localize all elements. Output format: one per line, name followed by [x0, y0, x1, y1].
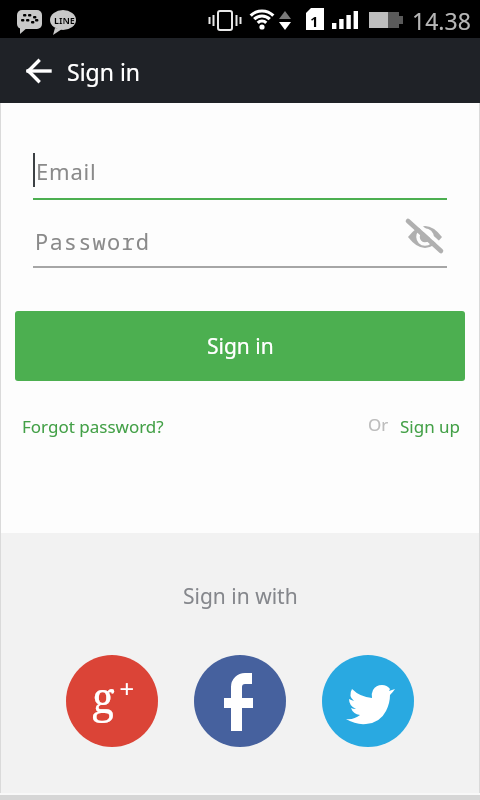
staticText: LINE: [54, 14, 75, 26]
staticText: Email: [36, 156, 97, 186]
staticText: +: [119, 669, 135, 707]
staticText: Sign in: [207, 332, 274, 361]
staticText: Forgot password?: [22, 415, 164, 438]
staticText: Sign in with: [183, 582, 298, 611]
button[interactable]: g: [66, 655, 158, 747]
button[interactable]: Forgot password?: [22, 415, 164, 438]
staticText: Sign up: [400, 415, 461, 438]
staticText: Sign in: [67, 56, 141, 87]
staticText: g: [92, 668, 115, 725]
staticText: Password: [35, 226, 151, 256]
button[interactable]: [403, 217, 447, 257]
button[interactable]: [322, 655, 414, 747]
button[interactable]: [25, 57, 53, 85]
staticText: 1: [310, 11, 319, 31]
staticText: Or: [368, 413, 389, 436]
staticText: 14.38: [412, 5, 471, 36]
button[interactable]: [194, 655, 286, 747]
button[interactable]: Sign in: [15, 311, 465, 381]
button[interactable]: Sign up: [400, 415, 461, 438]
